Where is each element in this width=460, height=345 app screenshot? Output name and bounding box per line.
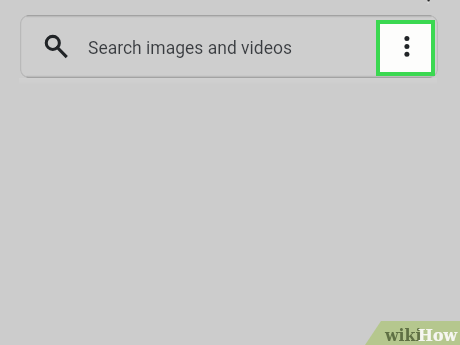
- staticText: How: [418, 325, 457, 345]
- staticText: wiki: [385, 325, 422, 345]
- staticText: Search images and videos: [88, 38, 292, 59]
- button[interactable]: More options: [376, 20, 435, 76]
- button[interactable]: Search images and videos: [20, 15, 438, 78]
